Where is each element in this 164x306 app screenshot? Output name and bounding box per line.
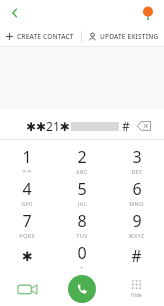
staticText: TUV	[76, 232, 88, 239]
button[interactable]: 6	[109, 176, 164, 208]
button[interactable]: #	[109, 240, 164, 272]
staticText: 9	[132, 210, 142, 232]
staticText: 0	[77, 242, 87, 264]
button[interactable]: 2	[54, 144, 109, 176]
button[interactable]: CREATE CONTACT	[0, 32, 81, 41]
staticText: MNO	[129, 200, 144, 207]
staticText: +	[80, 264, 84, 271]
button[interactable]: UPDATE EXISTING	[82, 32, 164, 41]
staticText: #	[131, 245, 142, 267]
staticText: 2	[77, 146, 87, 168]
button[interactable]: Backspace	[135, 117, 153, 135]
button[interactable]: Video call	[0, 272, 54, 306]
button[interactable]: 7	[0, 208, 54, 240]
staticText: 1	[22, 146, 32, 168]
staticText: 8	[77, 210, 87, 232]
staticText: CREATE CONTACT	[17, 32, 74, 41]
staticText: UPDATE EXISTING	[100, 32, 159, 41]
button[interactable]: Call	[68, 275, 96, 303]
staticText: JKL	[78, 200, 87, 207]
staticText: ✱✱21✱	[26, 118, 70, 134]
staticText: PQRS	[19, 232, 35, 239]
button[interactable]: Promotion	[138, 3, 158, 23]
staticText: 5	[77, 178, 87, 200]
button[interactable]: ✱	[0, 240, 54, 272]
staticText: WXYZ	[128, 232, 145, 239]
staticText: #	[122, 118, 130, 134]
button[interactable]: 1	[0, 144, 54, 176]
button[interactable]: 3	[109, 144, 164, 176]
staticText: GHI	[21, 200, 33, 207]
staticText: DEF	[131, 168, 143, 175]
staticText: 3	[132, 146, 142, 168]
button[interactable]: 4	[0, 176, 54, 208]
staticText: 6	[132, 178, 142, 200]
button[interactable]: Back	[4, 2, 26, 24]
staticText: ✱	[22, 249, 33, 264]
staticText: Hide	[131, 292, 142, 299]
button[interactable]: 8	[54, 208, 109, 240]
button[interactable]: 9	[109, 208, 164, 240]
staticText: ABC	[76, 168, 88, 175]
staticText: ∞∞	[22, 168, 32, 174]
staticText: 7	[22, 210, 32, 232]
button[interactable]: 5	[54, 176, 109, 208]
staticText: 4	[22, 178, 32, 200]
button[interactable]: 0	[54, 240, 109, 272]
button[interactable]: Hide keypad	[109, 272, 164, 306]
